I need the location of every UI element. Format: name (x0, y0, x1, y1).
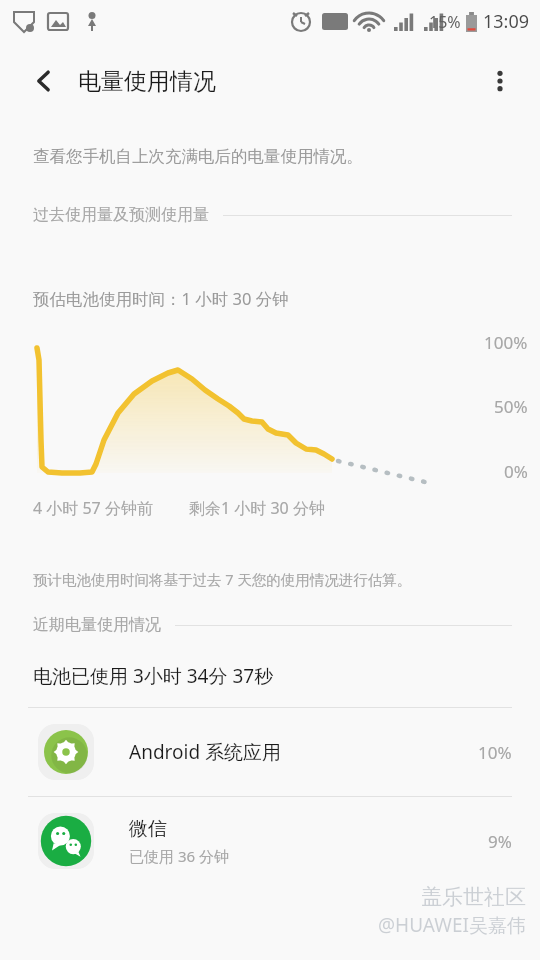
staticText: 近期电量使用情况 (33, 615, 161, 635)
staticText: 9% (488, 830, 512, 853)
button[interactable]: More options (478, 59, 522, 103)
staticText: 13:09 (483, 9, 530, 34)
staticText: 0% (504, 460, 528, 483)
staticText: 微信 (129, 817, 167, 841)
staticText: 已使用 36 分钟 (129, 846, 229, 866)
button[interactable]: Android 系统应用 (0, 708, 540, 796)
button[interactable]: Back (22, 59, 66, 103)
staticText: 过去使用量及预测使用量 (33, 205, 209, 225)
staticText: 盖乐世社区 (421, 884, 526, 910)
staticText: 10% (478, 741, 512, 764)
staticText: 电量使用情况 (78, 67, 216, 96)
staticText: 电池已使用 3小时 34分 37秒 (33, 663, 274, 689)
staticText: 预估电池使用时间：1 小时 30 分钟 (33, 287, 289, 310)
staticText: Android 系统应用 (129, 739, 282, 765)
staticText: 预计电池使用时间将基于过去 7 天您的使用情况进行估算。 (33, 569, 412, 589)
staticText: 100% (484, 331, 528, 354)
staticText: 50% (494, 395, 528, 418)
staticText: 查看您手机自上次充满电后的电量使用情况。 (33, 146, 363, 167)
staticText: 15% (429, 11, 461, 33)
staticText: 剩余1 小时 30 分钟 (189, 497, 325, 519)
staticText: 4 小时 57 分钟前 (33, 497, 153, 519)
staticText: @HUAWEI吴嘉伟 (378, 912, 526, 938)
button[interactable]: 微信 (0, 797, 540, 885)
